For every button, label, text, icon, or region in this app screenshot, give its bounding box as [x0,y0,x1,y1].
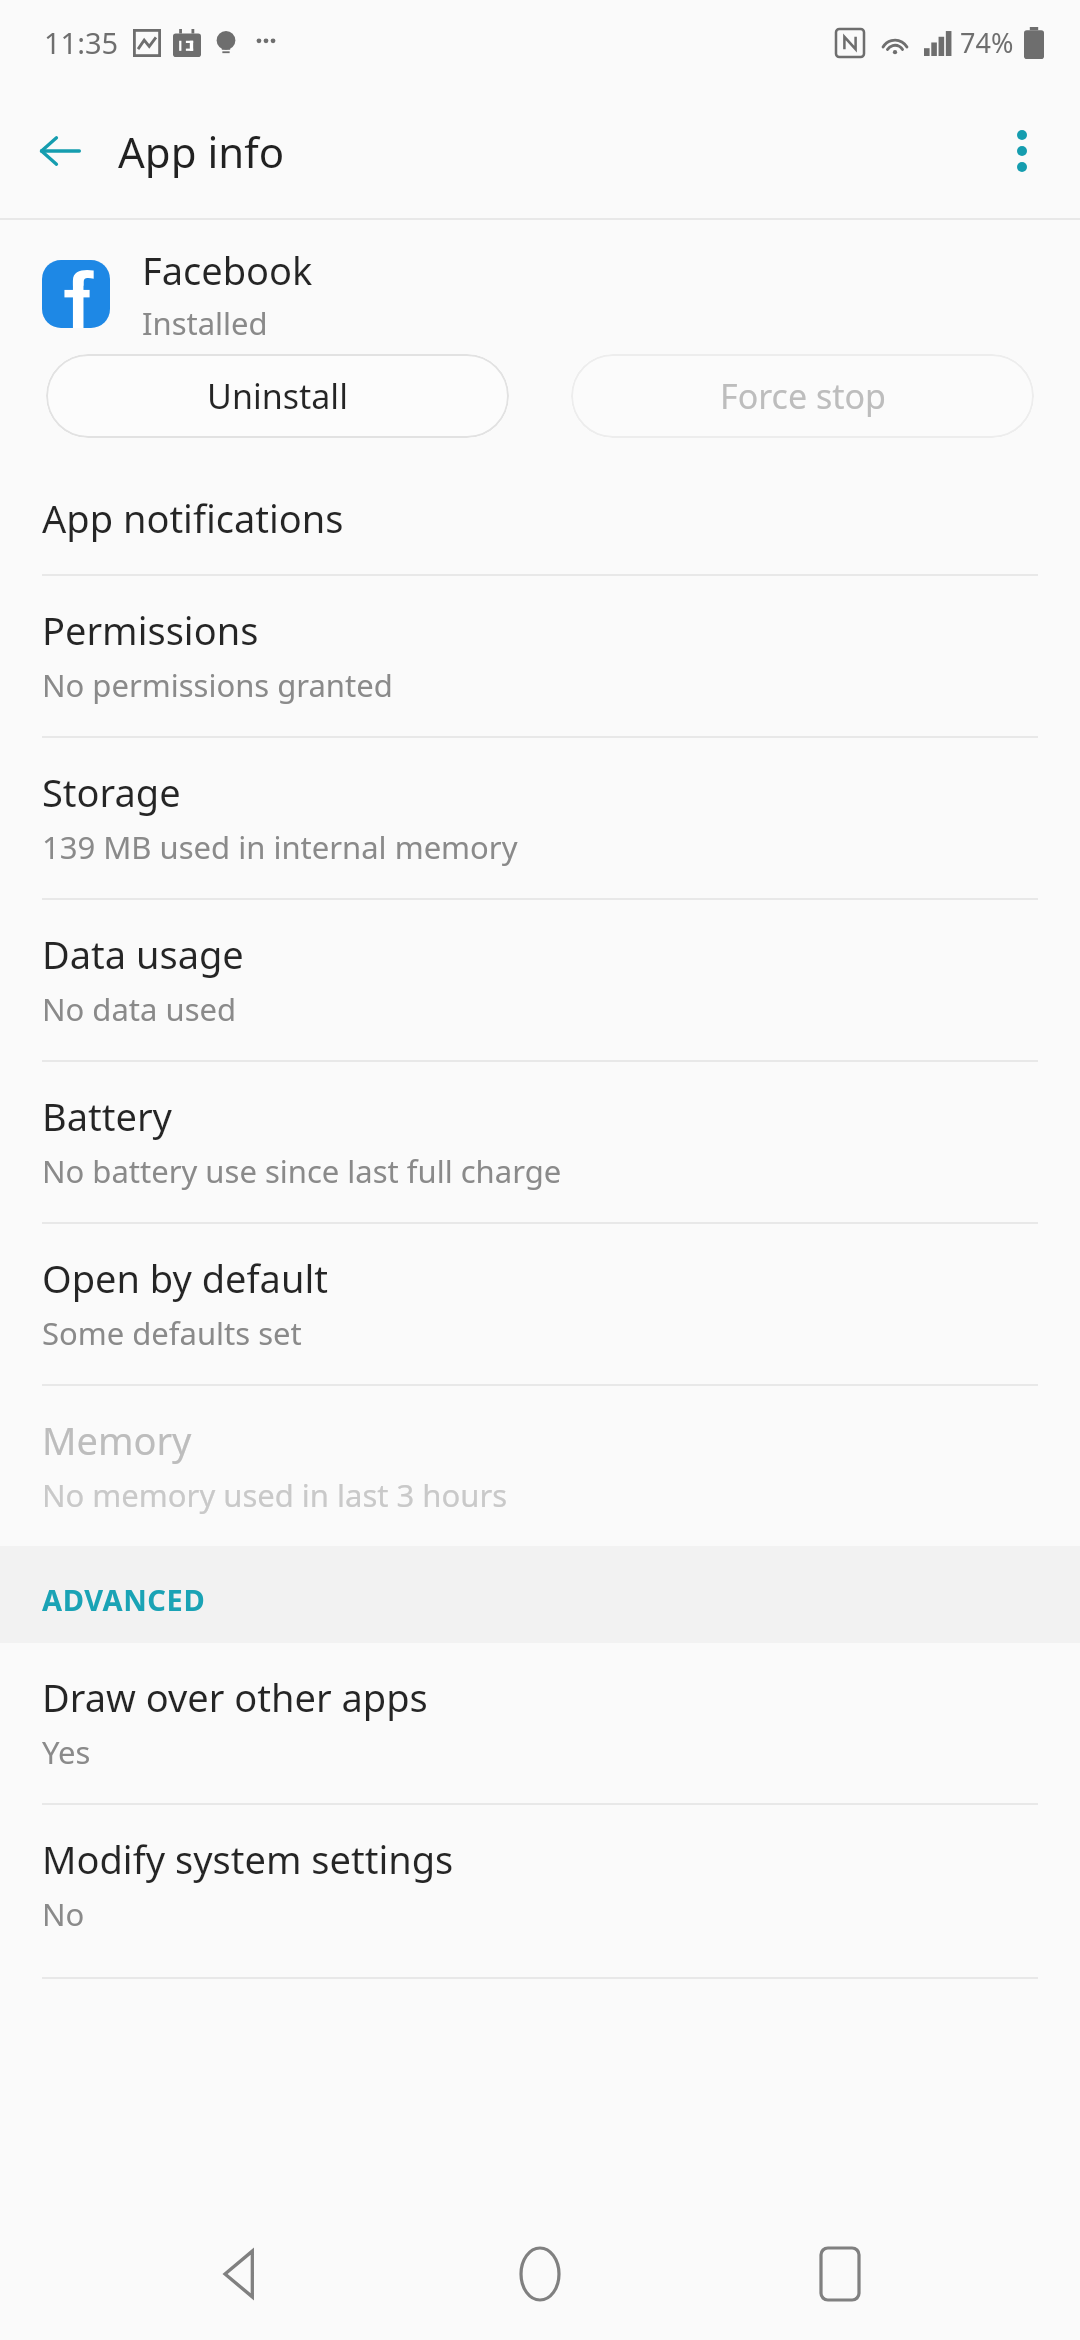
staticText: No data used [42,988,237,1030]
staticText: Permissions [42,604,259,656]
button[interactable]: Permissions [0,576,1080,736]
button[interactable]: Home [480,2214,600,2334]
button[interactable]: Open by default [0,1224,1080,1384]
staticText: App info [118,123,285,180]
staticText: 139 MB used in internal memory [42,826,518,868]
staticText: Draw over other apps [42,1671,428,1723]
button[interactable]: Data usage [0,900,1080,1060]
staticText: No permissions granted [42,664,393,706]
button[interactable]: Modify system settings [0,1805,1080,1965]
staticText: Storage [42,766,181,818]
staticText: 11:35 [44,23,119,62]
staticText: ADVANCED [42,1580,206,1619]
button[interactable]: More options [986,115,1058,187]
staticText: Force stop [720,373,886,419]
button[interactable]: Battery [0,1062,1080,1222]
staticText: Installed [142,302,268,344]
staticText: No battery use since last full charge [42,1150,562,1192]
button[interactable]: Memory [0,1386,1080,1546]
staticText: Some defaults set [42,1312,302,1354]
button[interactable]: Draw over other apps [0,1643,1080,1803]
staticText: Facebook [142,244,313,296]
button[interactable]: App notifications [0,464,1080,574]
staticText: Uninstall [207,373,348,419]
staticText: Battery [42,1090,172,1142]
button[interactable]: Recents [780,2214,900,2334]
button[interactable]: Force stop [571,354,1034,438]
staticText: App notifications [42,492,344,544]
staticText: No memory used in last 3 hours [42,1474,508,1516]
button[interactable]: Uninstall [46,354,509,438]
staticText: No [42,1893,85,1935]
button[interactable]: Back [180,2214,300,2334]
staticText: Open by default [42,1252,328,1304]
staticText: 74% [960,24,1014,61]
button[interactable]: Back [24,115,96,187]
staticText: Memory [42,1414,192,1466]
staticText: Data usage [42,928,244,980]
staticText: Yes [42,1731,91,1773]
staticText: Modify system settings [42,1833,454,1885]
button[interactable]: Storage [0,738,1080,898]
